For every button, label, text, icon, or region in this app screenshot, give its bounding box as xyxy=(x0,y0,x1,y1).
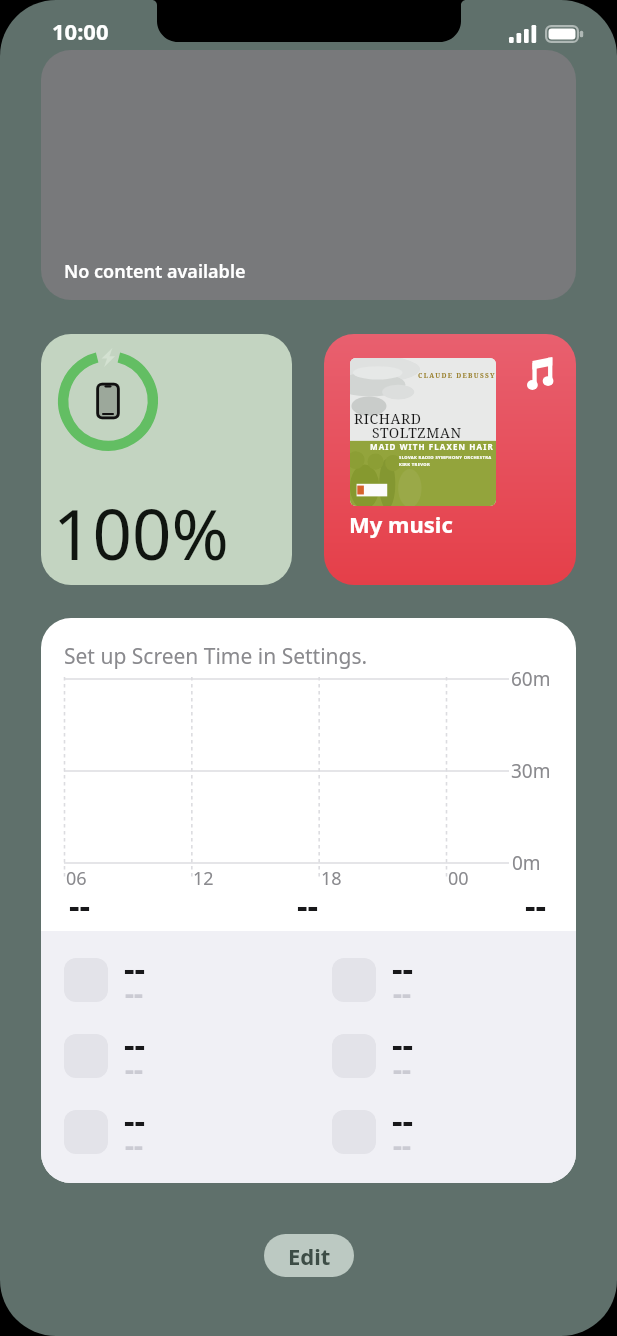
button[interactable]: Edit xyxy=(264,1234,354,1277)
staticText: -- xyxy=(393,1050,411,1088)
staticText: RICHARD xyxy=(354,409,422,428)
staticText: 06 xyxy=(66,866,87,891)
staticText: MAID WITH FLAXEN HAIR xyxy=(370,441,494,452)
button[interactable]: -- xyxy=(332,1034,532,1082)
staticText: -- xyxy=(525,883,547,928)
staticText: -- xyxy=(125,1126,143,1164)
staticText: KIRK TREVOR xyxy=(399,462,431,468)
staticText: 0m xyxy=(512,850,541,876)
button[interactable]: -- xyxy=(64,958,264,1006)
staticText: 18 xyxy=(321,866,342,891)
staticText: 60m xyxy=(511,666,551,692)
staticText: -- xyxy=(393,974,411,1012)
staticText: -- xyxy=(125,1050,143,1088)
button[interactable]: -- xyxy=(332,958,532,1006)
staticText: -- xyxy=(124,1022,146,1067)
staticText: 100% xyxy=(53,486,229,580)
staticText: STOLTZMAN xyxy=(372,423,462,442)
staticText: 12 xyxy=(193,866,214,891)
button[interactable]: -- xyxy=(64,1034,264,1082)
staticText: -- xyxy=(124,1098,146,1143)
staticText: SLOVAK RADIO SYMPHONY ORCHESTRA xyxy=(399,455,492,461)
button[interactable]: 100% xyxy=(41,334,292,585)
staticText: Set up Screen Time in Settings. xyxy=(64,642,368,671)
button[interactable]: CLAUDE DEBUSSY xyxy=(324,334,576,585)
button[interactable]: -- xyxy=(332,1110,532,1158)
other: Music xyxy=(527,357,554,390)
staticText: -- xyxy=(125,974,143,1012)
staticText: My music xyxy=(349,509,453,539)
staticText: 00 xyxy=(448,866,469,891)
staticText: 30m xyxy=(511,758,551,784)
button[interactable]: Set up Screen Time in Settings. xyxy=(41,618,576,1183)
staticText: -- xyxy=(124,946,146,991)
staticText: Edit xyxy=(288,1241,331,1271)
staticText: -- xyxy=(392,1098,414,1143)
staticText: 10:00 xyxy=(52,16,109,46)
button[interactable]: No content available xyxy=(41,50,576,300)
staticText: No content available xyxy=(64,259,246,284)
staticText: -- xyxy=(69,883,91,928)
button[interactable]: -- xyxy=(64,1110,264,1158)
staticText: CLAUDE DEBUSSY xyxy=(418,371,496,380)
staticText: -- xyxy=(393,1126,411,1164)
staticText: -- xyxy=(392,1022,414,1067)
staticText: -- xyxy=(392,946,414,991)
staticText: -- xyxy=(297,883,319,928)
